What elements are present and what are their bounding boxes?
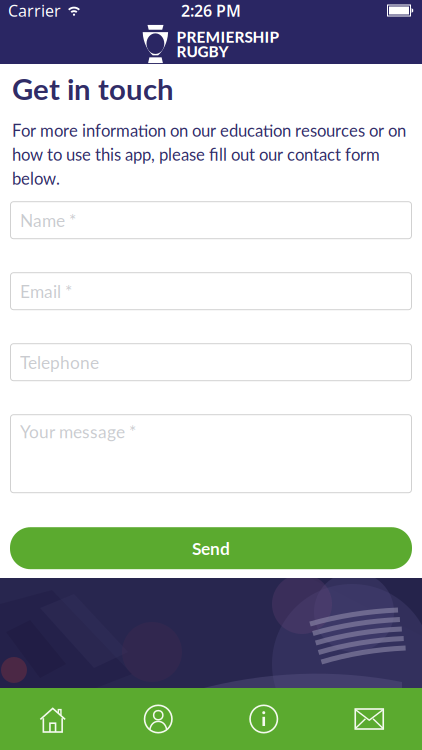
- staticText: 2:26 PM: [181, 0, 241, 21]
- button[interactable]: Name *: [10, 201, 412, 239]
- button[interactable]: Information: [211, 688, 316, 750]
- button[interactable]: Send: [10, 527, 412, 569]
- staticText: Your message *: [20, 421, 136, 442]
- button[interactable]: Telephone: [10, 343, 412, 381]
- staticText: Get in touch: [12, 71, 174, 106]
- staticText: PREMIERSHIP: [176, 28, 279, 46]
- staticText: Send: [192, 538, 230, 559]
- staticText: For more information on our education re…: [12, 120, 406, 188]
- staticText: RUGBY: [176, 42, 228, 60]
- button[interactable]: Your message *: [10, 414, 412, 493]
- button[interactable]: Contact: [316, 688, 422, 750]
- button[interactable]: Home: [0, 688, 105, 750]
- staticText: Email *: [20, 281, 72, 302]
- button[interactable]: Profile: [105, 688, 211, 750]
- staticText: Name *: [20, 210, 76, 231]
- staticText: Carrier: [8, 0, 61, 21]
- staticText: Telephone: [20, 352, 99, 373]
- button[interactable]: Email *: [10, 272, 412, 310]
